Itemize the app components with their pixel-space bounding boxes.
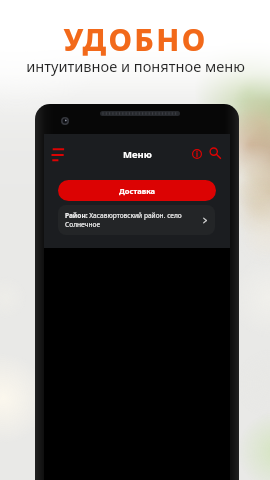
button[interactable]: Search	[204, 142, 225, 163]
button[interactable]: Info	[186, 143, 207, 164]
staticText: Меню	[123, 148, 152, 161]
button[interactable]: Menu	[47, 141, 69, 167]
button[interactable]: Район: Хасавюртовский район. село Солнеч…	[58, 205, 215, 235]
staticText: УДОБНО	[63, 19, 208, 60]
staticText: интуитивное и понятное меню	[26, 56, 245, 76]
staticText: Доставка	[119, 186, 156, 196]
button[interactable]: Доставка	[58, 180, 216, 201]
staticText: Район: Хасавюртовский район. село Солнеч…	[65, 211, 201, 229]
